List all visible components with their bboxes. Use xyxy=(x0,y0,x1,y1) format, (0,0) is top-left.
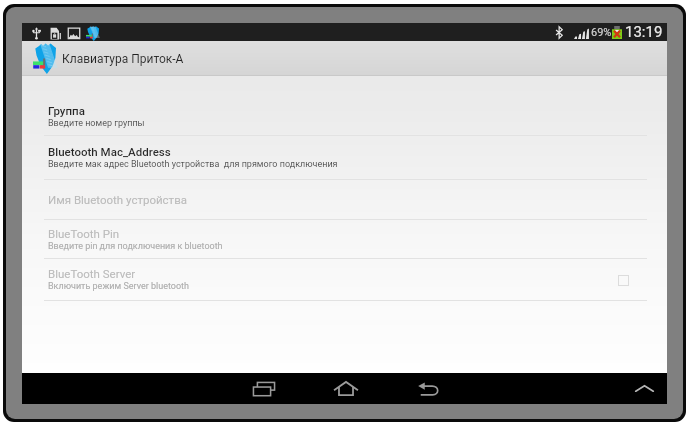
button[interactable]: BlueTooth Pin xyxy=(22,220,667,259)
staticText: BlueTooth Pin xyxy=(48,227,120,240)
staticText: Включить режим Server bluetooth xyxy=(48,281,189,292)
button[interactable]: Recents xyxy=(244,373,284,404)
staticText: BlueTooth Server xyxy=(48,267,136,280)
button[interactable]: Группа xyxy=(22,97,667,136)
staticText: 13:19 xyxy=(625,23,663,41)
button[interactable]: Toggle BlueTooth Server xyxy=(618,275,629,286)
button[interactable]: Имя Bluetooth устройства xyxy=(22,180,667,220)
staticText: Введите pin для подключения к bluetooth xyxy=(48,241,223,252)
button[interactable]: Bluetooth Mac_Address xyxy=(22,136,667,180)
staticText: Клавиатура Приток-А xyxy=(62,52,184,66)
staticText: 69% xyxy=(591,26,612,39)
staticText: Bluetooth Mac_Address xyxy=(48,145,171,158)
staticText: Введите номер группы xyxy=(48,118,145,129)
button[interactable]: Клавиатура Приток-А xyxy=(22,41,667,76)
button[interactable]: Expand xyxy=(624,373,664,404)
staticText: Группа xyxy=(48,104,85,117)
button[interactable]: Home xyxy=(326,373,366,404)
button[interactable]: BlueTooth Server xyxy=(22,259,667,301)
staticText: Введите мак адрес Bluetooth устройства д… xyxy=(48,159,338,170)
button[interactable]: Back xyxy=(408,373,448,404)
staticText: Имя Bluetooth устройства xyxy=(48,193,187,206)
